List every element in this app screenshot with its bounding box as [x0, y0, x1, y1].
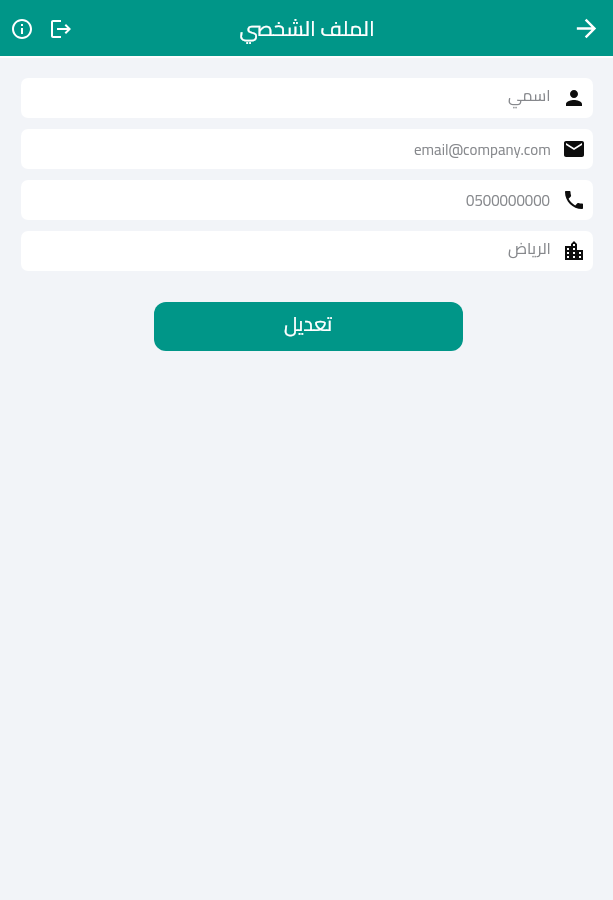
staticText: email@company.com [414, 135, 551, 163]
staticText: الملف الشخصي [239, 9, 375, 48]
button[interactable]: Info [0, 7, 43, 50]
staticText: الرياض [508, 233, 551, 263]
button[interactable]: 0500000000 [21, 180, 593, 220]
button[interactable]: الرياض [21, 231, 593, 271]
staticText: تعديل [284, 305, 333, 342]
staticText: 0500000000 [466, 186, 551, 214]
button[interactable]: Logout [43, 11, 79, 47]
button[interactable]: Back [562, 4, 610, 52]
button[interactable]: email@company.com [21, 129, 593, 169]
staticText: اسمي [508, 80, 551, 110]
button[interactable]: اسمي [21, 78, 593, 118]
button[interactable]: تعديل [154, 302, 463, 351]
